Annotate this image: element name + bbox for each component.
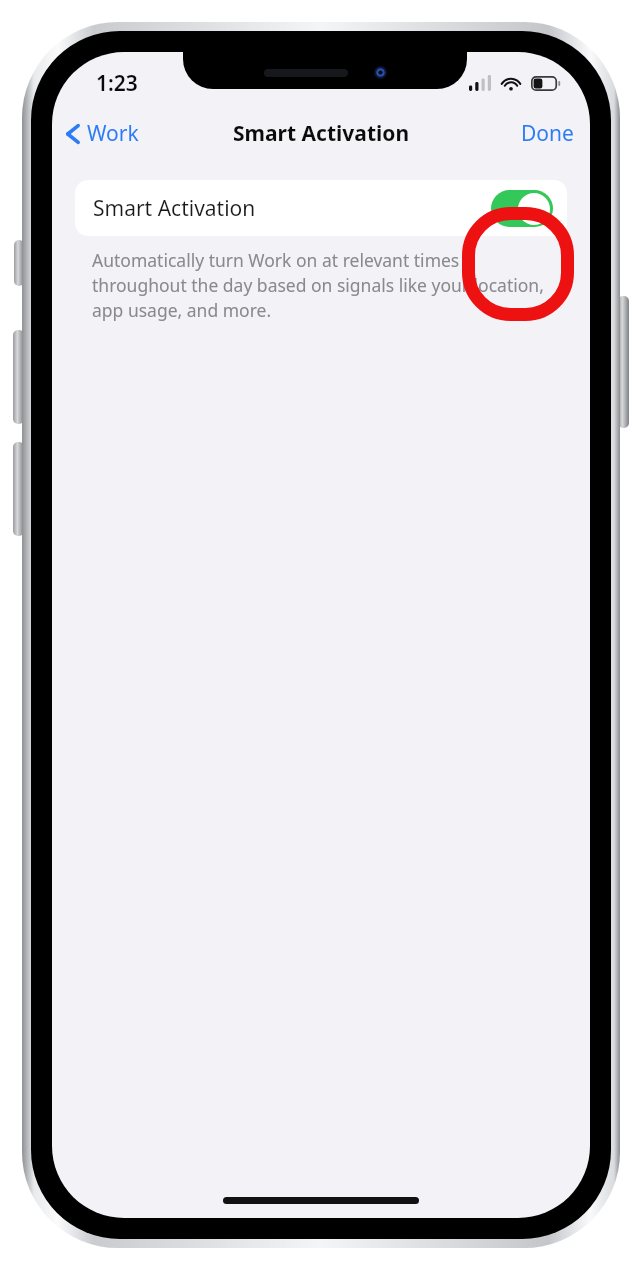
staticText: 1:23 — [96, 69, 138, 98]
button[interactable]: Smart Activation — [75, 180, 567, 236]
staticText: Done — [521, 119, 574, 148]
staticText: Work — [87, 119, 139, 148]
button[interactable]: Work — [52, 115, 149, 152]
staticText: Smart Activation — [93, 194, 256, 223]
staticText: Smart Activation — [233, 119, 410, 148]
button[interactable]: Done — [505, 114, 590, 153]
button[interactable]: Smart Activation toggle, on — [491, 190, 553, 227]
staticText: Automatically turn Work on at relevant t… — [92, 248, 544, 322]
